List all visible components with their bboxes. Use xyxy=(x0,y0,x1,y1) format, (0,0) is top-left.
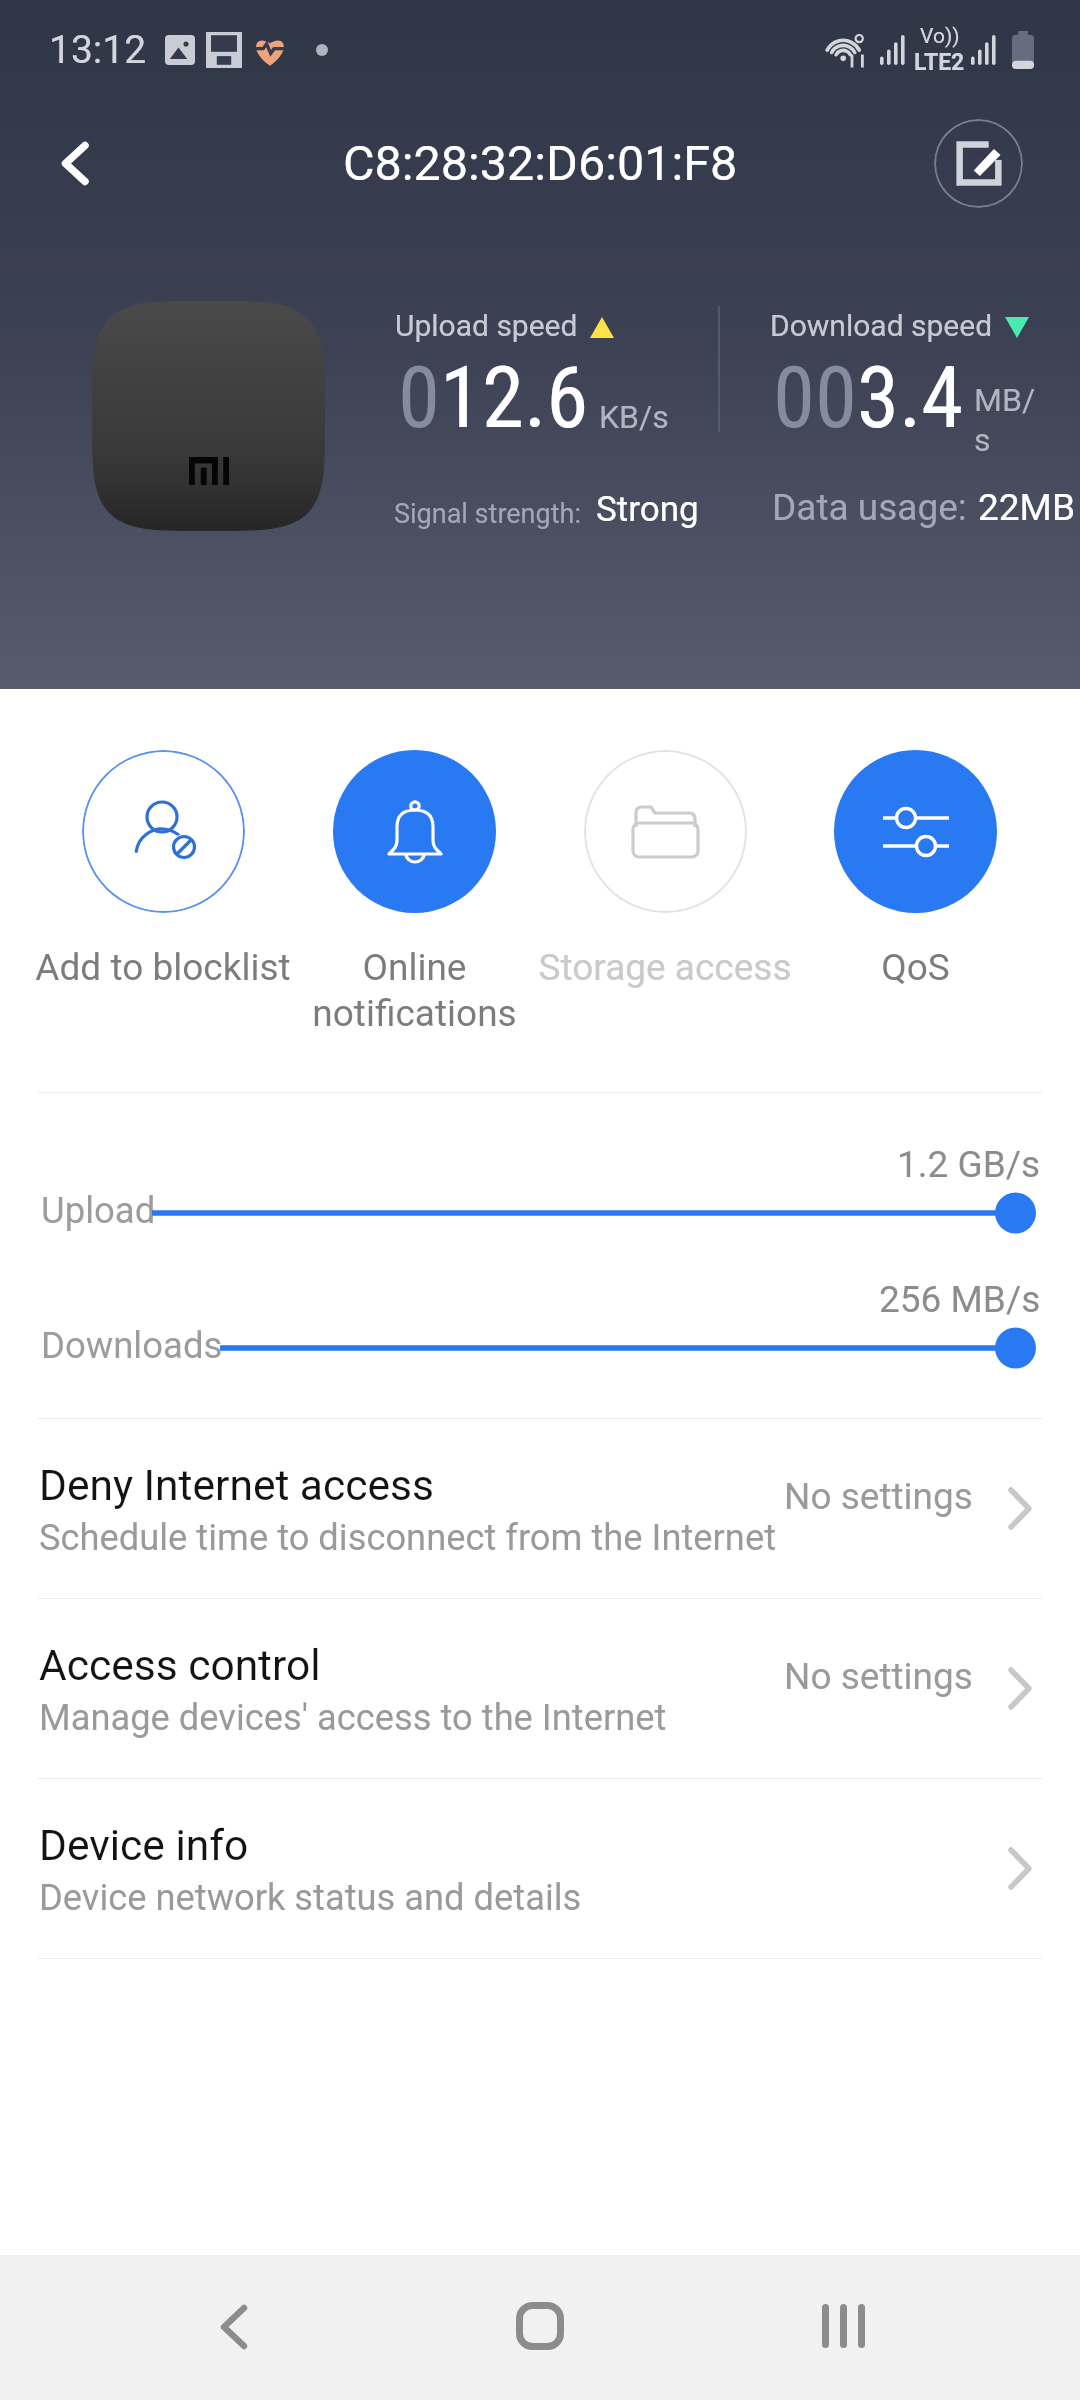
staticText: Device network status and details xyxy=(39,1876,582,1919)
button[interactable]: Recents xyxy=(753,2255,933,2397)
button[interactable]: Back xyxy=(36,125,112,201)
staticText: QoS xyxy=(881,946,950,989)
staticText: 003.4 xyxy=(773,348,964,448)
staticText: Access control xyxy=(39,1641,321,1691)
button[interactable]: Access control xyxy=(0,1598,1080,1778)
staticText: LTE2 xyxy=(914,49,965,76)
staticText: Online notifications xyxy=(312,946,517,1035)
staticText: Downloads xyxy=(41,1324,223,1367)
button[interactable]: QoS xyxy=(745,750,1080,989)
staticText: No settings xyxy=(784,1655,973,1698)
button[interactable]: Device info xyxy=(0,1778,1080,1958)
staticText: Deny Internet access xyxy=(39,1461,434,1511)
staticText: Storage access xyxy=(538,946,792,989)
staticText: 256 MB/s xyxy=(879,1278,1041,1321)
button[interactable]: Edit xyxy=(934,119,1023,208)
button[interactable]: 256 MB/s xyxy=(0,1258,1080,1438)
staticText: Data usage: xyxy=(772,486,967,529)
staticText: MB/ s xyxy=(974,381,1036,459)
button[interactable]: 1.2 GB/s xyxy=(0,1123,1080,1303)
button[interactable]: Back xyxy=(147,2255,327,2398)
button[interactable]: Deny Internet access xyxy=(0,1418,1080,1598)
staticText: 012.6 xyxy=(398,348,589,448)
staticText: Download speed xyxy=(770,308,993,343)
staticText: Signal strength: xyxy=(394,498,581,530)
staticText: KB/s xyxy=(599,398,669,436)
staticText: Vo)) xyxy=(920,24,960,49)
button[interactable]: Add to blocklist xyxy=(0,750,333,989)
staticText: Schedule time to disconnect from the Int… xyxy=(39,1516,777,1559)
staticText: Strong xyxy=(596,489,699,530)
staticText: Manage devices' access to the Internet xyxy=(39,1696,667,1739)
staticText: Upload xyxy=(41,1189,156,1232)
staticText: 1.2 GB/s xyxy=(897,1143,1041,1186)
staticText: C8:28:32:D6:01:F8 xyxy=(343,135,738,192)
button[interactable]: Online notifications xyxy=(244,750,584,1035)
staticText: No settings xyxy=(784,1475,973,1518)
staticText: 13:12 xyxy=(49,27,147,73)
staticText: Upload speed xyxy=(395,308,578,343)
staticText: 22MB xyxy=(978,486,1075,529)
staticText: Add to blocklist xyxy=(35,946,291,989)
button[interactable]: Home xyxy=(450,2255,630,2397)
staticText: Device info xyxy=(39,1821,249,1871)
button[interactable]: Storage access xyxy=(495,750,835,989)
